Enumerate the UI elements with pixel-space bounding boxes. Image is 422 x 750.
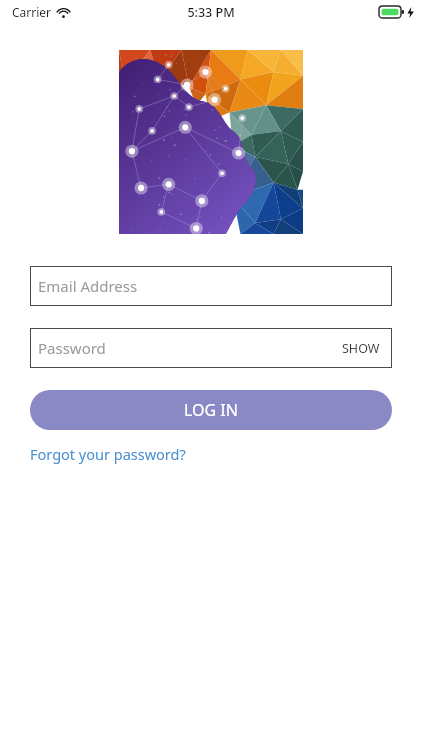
button[interactable]: Password	[30, 328, 392, 368]
staticText: LOG IN	[184, 399, 238, 421]
button[interactable]: Forgot your password?	[30, 440, 186, 468]
staticText: SHOW	[342, 340, 380, 357]
staticText: 5:33 PM	[187, 4, 235, 21]
staticText: Email Address	[38, 276, 138, 296]
staticText: Forgot your password?	[30, 444, 186, 464]
button[interactable]: Email Address	[30, 266, 392, 306]
button[interactable]: SHOW	[340, 336, 382, 361]
staticText: Password	[38, 338, 106, 358]
button[interactable]: LOG IN	[30, 390, 392, 430]
staticText: Carrier	[12, 4, 52, 20]
button[interactable]: App logo	[119, 50, 303, 234]
